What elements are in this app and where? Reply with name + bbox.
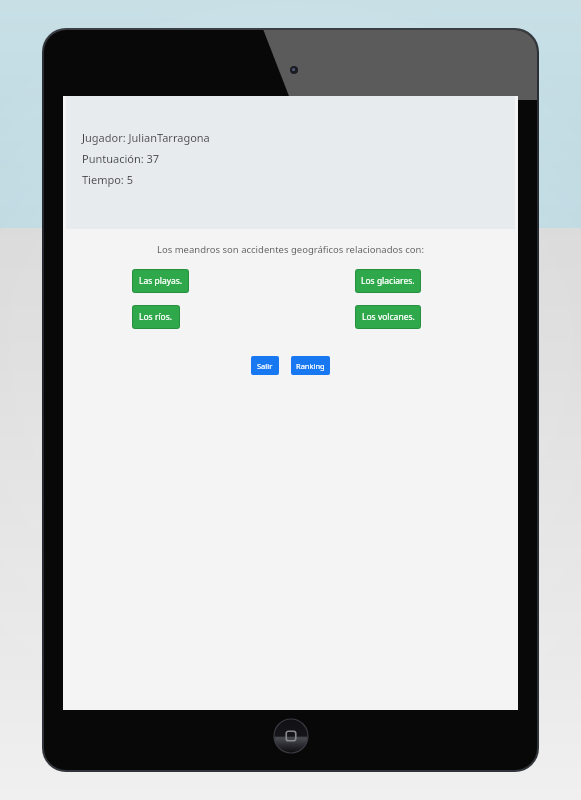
staticText: Jugador: JulianTarragona [82,130,210,145]
staticText: Ranking [296,361,325,371]
button[interactable]: Home [274,719,308,753]
staticText: Los volcanes. [362,311,415,323]
button[interactable]: Las playas. [133,270,188,292]
staticText: Las playas. [139,275,183,287]
button[interactable]: Salir [251,356,279,375]
button[interactable]: Los ríos. [133,306,179,328]
staticText: Puntuación: 37 [82,151,160,166]
staticText: Los ríos. [139,311,173,323]
staticText: Tiempo: 5 [82,172,133,187]
staticText: Los meandros son accidentes geográficos … [75,243,506,256]
button[interactable]: Ranking [291,356,330,375]
button[interactable]: Los glaciares. [356,270,420,292]
staticText: Los glaciares. [361,275,415,287]
button[interactable]: Los volcanes. [356,306,420,328]
staticText: Salir [257,361,273,371]
